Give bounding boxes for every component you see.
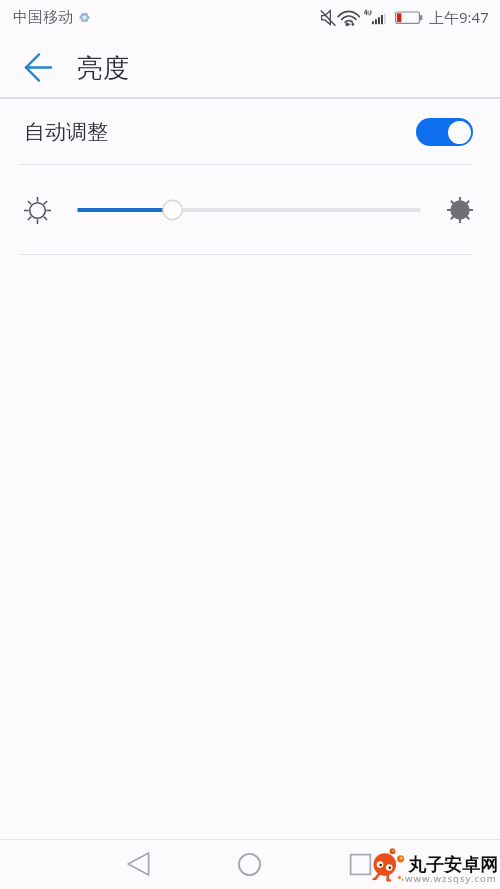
staticText: 亮度 xyxy=(77,52,129,85)
staticText: 上午9:47 xyxy=(429,7,489,27)
button[interactable]: Back xyxy=(113,839,163,889)
staticText: 丸子安卓网 xyxy=(408,854,498,877)
button[interactable]: Home xyxy=(224,839,274,889)
button[interactable]: Brightness slider xyxy=(66,196,432,224)
button[interactable]: 自动调整 xyxy=(0,99,500,164)
button[interactable]: Recents xyxy=(335,839,385,889)
staticText: 自动调整 xyxy=(24,119,108,145)
button[interactable]: Lower brightness xyxy=(13,186,62,235)
button[interactable]: Raise brightness xyxy=(435,185,485,235)
button[interactable]: Back xyxy=(16,45,60,89)
staticText: www.wzsqsy.com xyxy=(405,872,497,885)
staticText: 中国移动 xyxy=(13,8,73,27)
button[interactable]: Auto brightness toggle xyxy=(416,118,473,146)
